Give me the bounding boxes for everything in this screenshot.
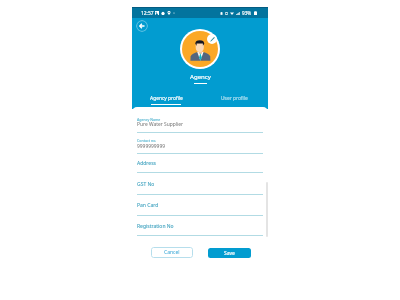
staticText: 12:57 <box>141 10 154 17</box>
button[interactable]: Back <box>136 20 148 32</box>
staticText: Save <box>224 250 235 257</box>
button[interactable]: Pan Card <box>137 196 263 216</box>
staticText: Pan Card <box>137 202 159 209</box>
button[interactable]: Registration No <box>137 217 263 236</box>
button[interactable]: Cancel <box>151 247 193 258</box>
button[interactable]: User profile <box>200 95 268 107</box>
staticText: Agency <box>190 72 211 80</box>
staticText: User profile <box>221 95 248 102</box>
staticText: Registration No <box>137 223 174 230</box>
button[interactable]: Agency Name <box>137 113 263 133</box>
staticText: 93% <box>242 10 252 16</box>
button[interactable]: Save <box>208 248 251 258</box>
staticText: Agency profile <box>150 95 183 102</box>
staticText: Contact no. <box>137 138 157 143</box>
staticText: GST No <box>137 181 155 188</box>
staticText: Address <box>137 160 156 167</box>
staticText: Pure Water Supplier <box>137 121 183 128</box>
button[interactable]: GST No <box>137 175 263 195</box>
staticText: 9999999999 <box>137 143 165 150</box>
button[interactable]: Agency profile <box>132 95 200 107</box>
staticText: Agency Name <box>137 117 161 122</box>
button[interactable]: Address <box>137 154 263 173</box>
button[interactable]: Contact no. <box>137 134 263 154</box>
button[interactable]: Edit profile photo <box>207 34 217 44</box>
staticText: Cancel <box>164 249 180 256</box>
